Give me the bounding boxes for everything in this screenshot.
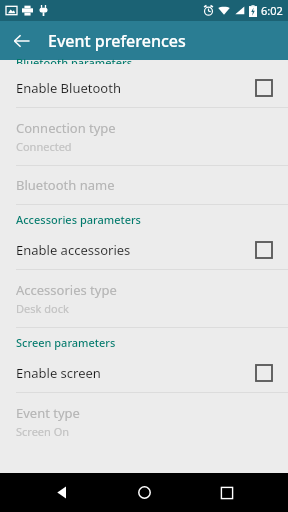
button[interactable]: Enable accessories bbox=[0, 231, 288, 269]
staticText: Accessories type bbox=[16, 281, 117, 299]
staticText: Screen On bbox=[16, 424, 70, 439]
button[interactable]: Recent apps bbox=[205, 473, 249, 512]
button[interactable]: Enable screen bbox=[0, 354, 288, 392]
button[interactable]: Back bbox=[39, 473, 83, 512]
staticText: Accessories parameters bbox=[16, 212, 141, 227]
button[interactable]: Home bbox=[122, 473, 166, 512]
staticText: Event preferences bbox=[48, 30, 186, 52]
button[interactable]: Back bbox=[6, 25, 38, 57]
button[interactable]: Enable Bluetooth bbox=[0, 69, 288, 107]
staticText: Bluetooth parameters bbox=[16, 55, 133, 64]
staticText: Enable screen bbox=[16, 364, 256, 382]
button[interactable]: Bluetooth name bbox=[0, 166, 288, 204]
staticText: Screen parameters bbox=[16, 335, 116, 350]
staticText: Connection type bbox=[16, 119, 116, 137]
staticText: Connected bbox=[16, 139, 72, 154]
staticText: 6:02 bbox=[261, 3, 283, 18]
staticText: Enable accessories bbox=[16, 241, 256, 259]
button[interactable]: Accessories type bbox=[0, 270, 288, 327]
staticText: Event type bbox=[16, 404, 80, 422]
staticText: Bluetooth name bbox=[16, 176, 115, 194]
staticText: Enable Bluetooth bbox=[16, 79, 256, 97]
staticText: Desk dock bbox=[16, 301, 69, 316]
button[interactable]: Event type bbox=[0, 393, 288, 450]
button[interactable]: Connection type bbox=[0, 108, 288, 165]
